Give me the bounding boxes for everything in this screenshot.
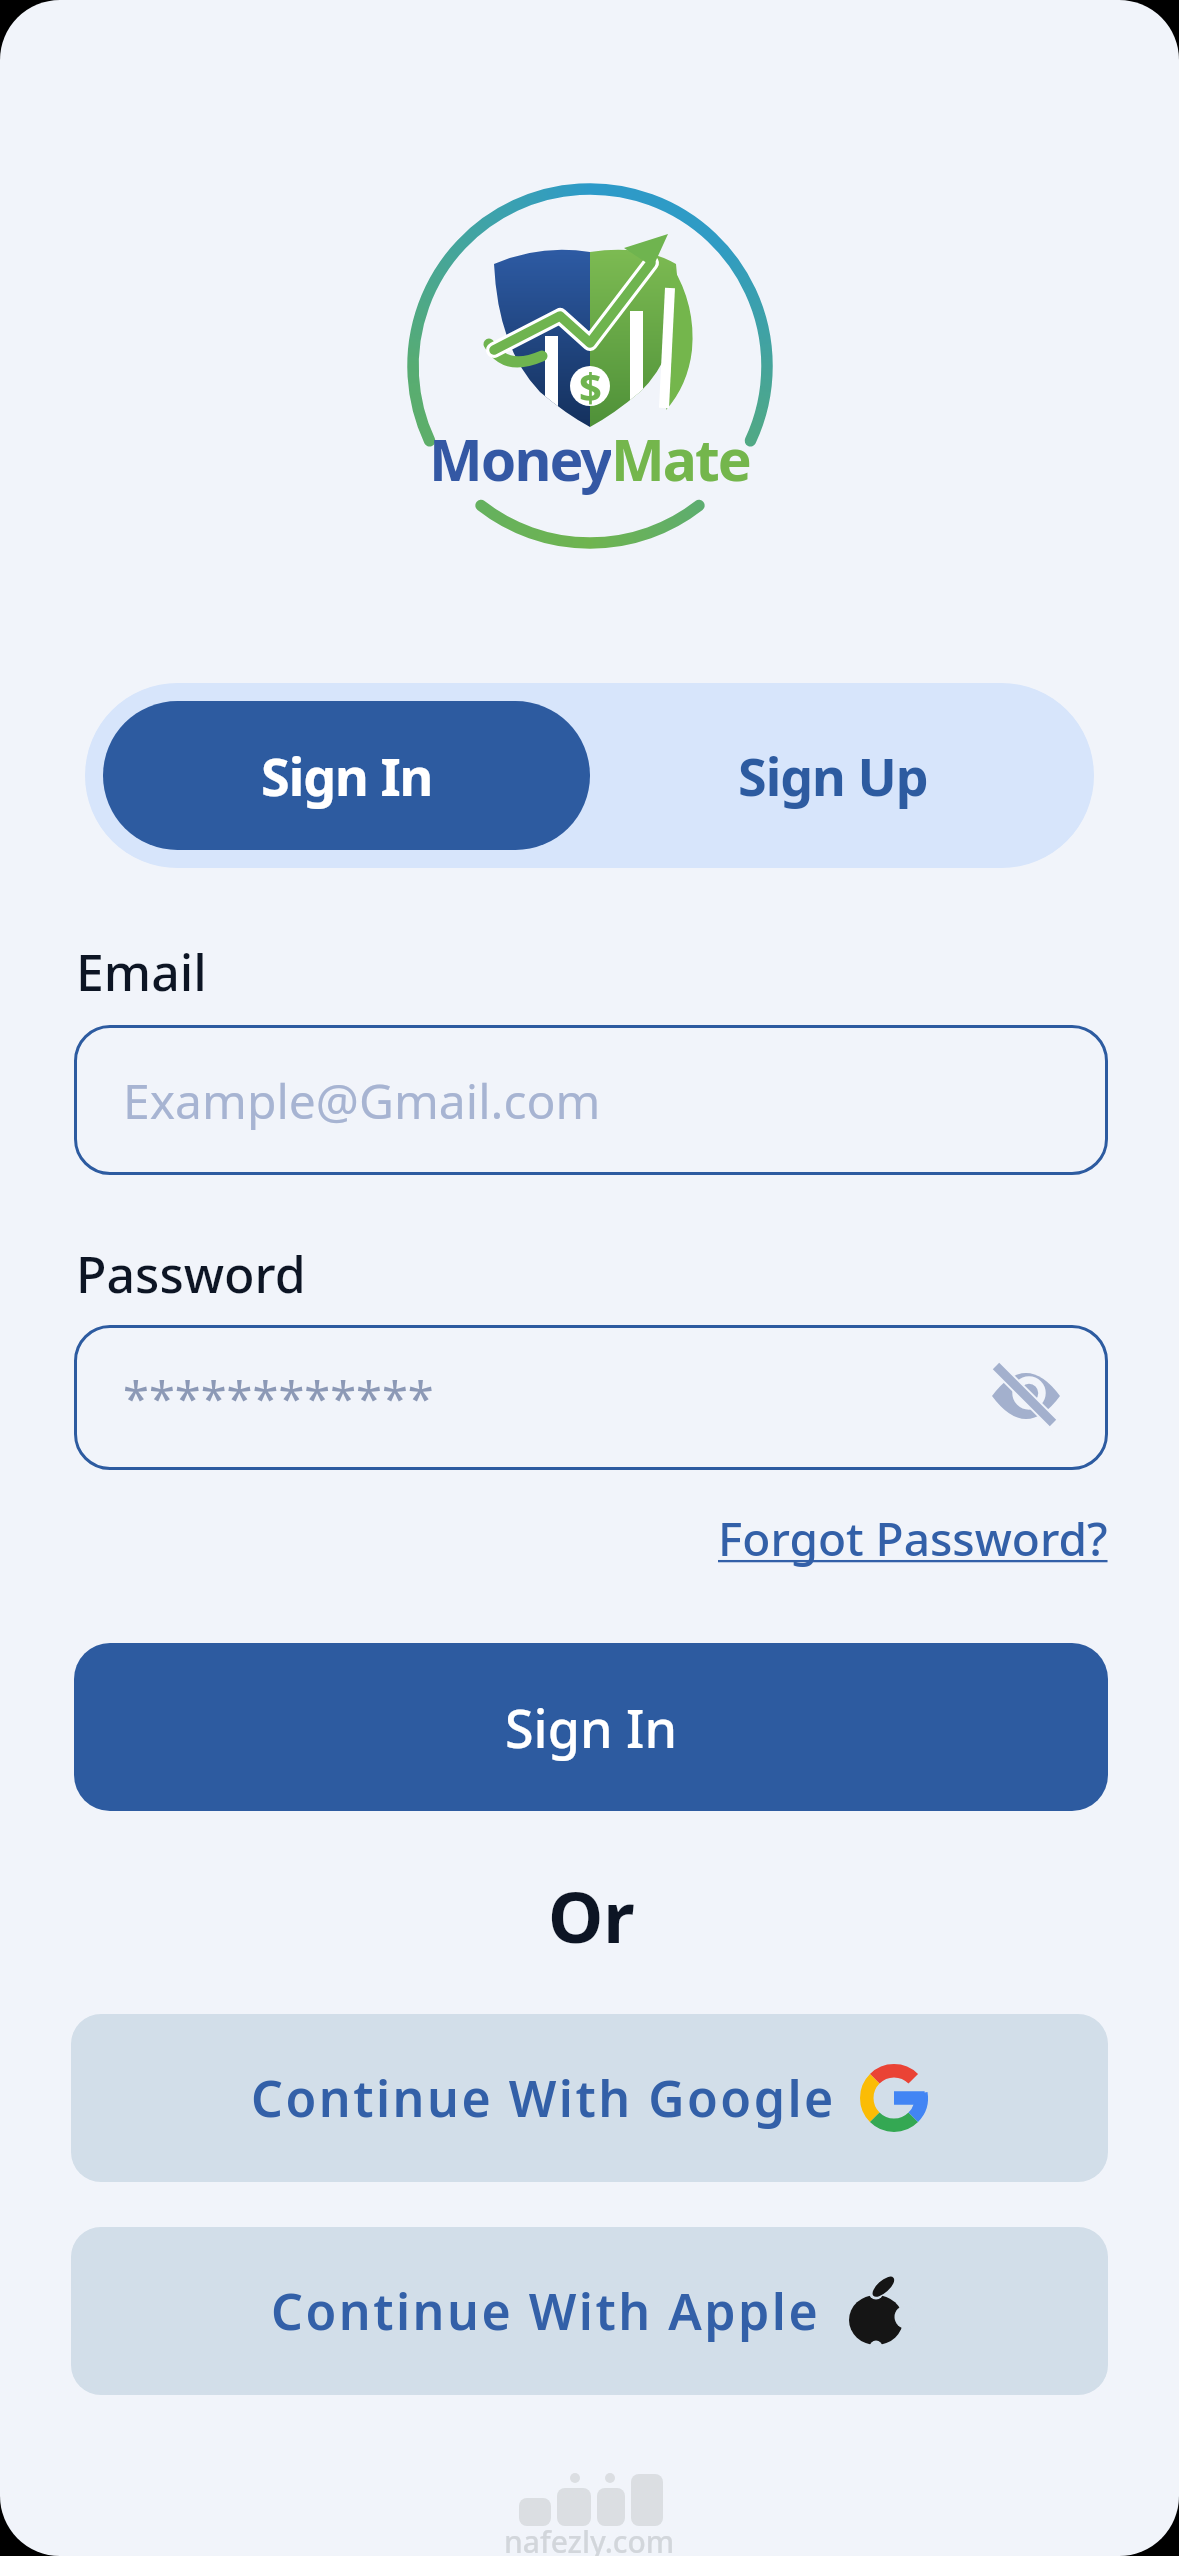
staticText: nafezly.com [504, 2521, 675, 2556]
staticText: Or [548, 1868, 635, 1960]
staticText: Forgot Password? [718, 1507, 1108, 1570]
button[interactable]: Continue With Apple [71, 2227, 1108, 2395]
staticText: Example@Gmail.com [123, 1068, 601, 1133]
staticText: Email [76, 938, 207, 1006]
staticText: Sign In [505, 1692, 678, 1763]
button[interactable]: Sign In [103, 701, 590, 850]
staticText: Sign Up [738, 740, 928, 811]
staticText: Mate [611, 420, 750, 496]
staticText: Continue With Google [251, 2064, 836, 2132]
staticText: Password [76, 1240, 306, 1308]
button[interactable]: Sign In [74, 1643, 1108, 1811]
staticText: ************ [123, 1366, 434, 1430]
button[interactable]: Example@Gmail.com [74, 1025, 1108, 1175]
staticText: Money [429, 420, 611, 496]
staticText: $ [579, 359, 602, 413]
staticText: Continue With Apple [271, 2277, 821, 2345]
button[interactable]: Forgot Password? [718, 1507, 1108, 1570]
button[interactable]: Sign Up [590, 701, 1076, 850]
button[interactable]: Continue With Google [71, 2014, 1108, 2182]
button[interactable]: ************ [74, 1325, 1108, 1470]
staticText: Sign In [261, 740, 433, 811]
